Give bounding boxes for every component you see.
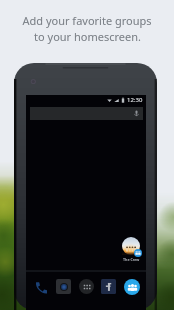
staticText: 12:30 [127, 96, 143, 104]
staticText: to your homescreen. [34, 29, 141, 44]
staticText: Add your favorite groups [22, 13, 152, 28]
button[interactable]: Google Search [30, 107, 143, 120]
button[interactable]: Phone [32, 279, 48, 295]
button[interactable]: The Crew [115, 237, 146, 267]
button[interactable]: Facebook [101, 279, 116, 294]
button[interactable]: All apps [79, 279, 94, 294]
staticText: The Crew [123, 257, 140, 262]
button[interactable]: Groups [124, 279, 140, 295]
button[interactable]: Camera [56, 279, 71, 294]
